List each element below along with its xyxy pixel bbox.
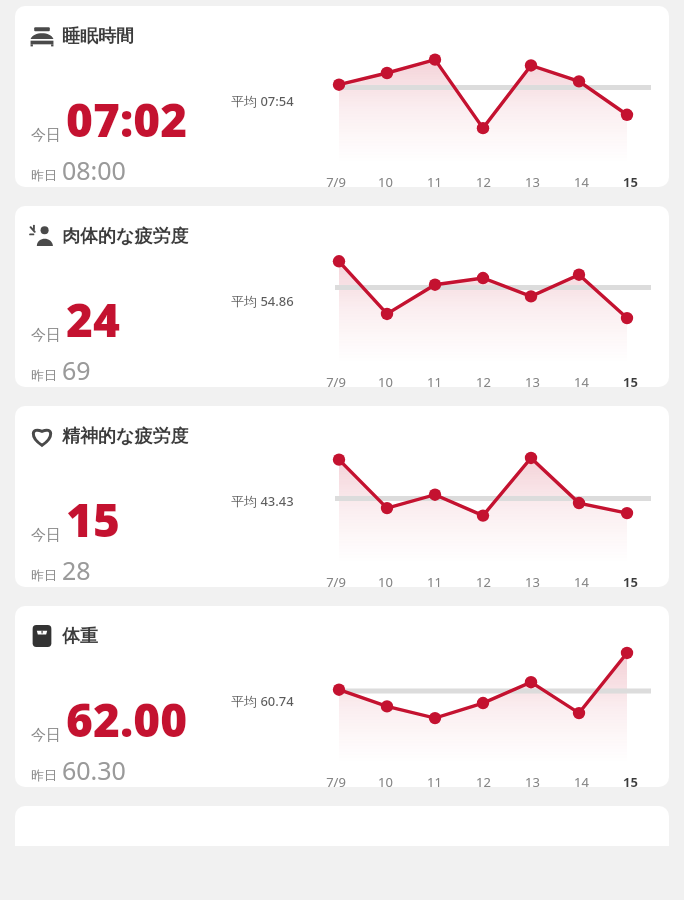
other: Sleep — [29, 23, 55, 49]
staticText: 13 — [508, 773, 557, 787]
staticText: 14 — [557, 173, 606, 187]
other: Weight — [29, 623, 55, 649]
staticText: 11 — [410, 373, 459, 387]
staticText: 10 — [361, 373, 410, 387]
staticText: 昨日 — [31, 567, 57, 583]
staticText: 体重 — [62, 625, 98, 648]
staticText: 69 — [62, 353, 91, 387]
staticText: 睡眠時間 — [62, 25, 134, 48]
staticText: 肉体的な疲労度 — [62, 225, 189, 248]
staticText: 10 — [361, 773, 410, 787]
staticText: 12 — [459, 773, 508, 787]
staticText: 12 — [459, 173, 508, 187]
staticText: 7/9 — [311, 173, 361, 187]
staticText: 11 — [410, 773, 459, 787]
other: Mental fatigue — [29, 423, 55, 449]
staticText: 08:00 — [62, 153, 126, 187]
staticText: 13 — [508, 373, 557, 387]
staticText: 12 — [459, 373, 508, 387]
staticText: 60.30 — [62, 753, 126, 787]
staticText: 10 — [361, 573, 410, 587]
staticText: 15 — [66, 488, 120, 551]
staticText: 今日 — [31, 526, 61, 545]
staticText: 62.00 — [66, 688, 188, 751]
staticText: 今日 — [31, 726, 61, 745]
staticText: 7/9 — [311, 373, 361, 387]
other: Physical fatigue — [29, 223, 55, 249]
button[interactable]: Mental fatigue — [15, 406, 669, 587]
staticText: 7/9 — [311, 773, 361, 787]
staticText: 13 — [508, 573, 557, 587]
staticText: 平均 54.86 — [231, 292, 294, 310]
staticText: 14 — [557, 573, 606, 587]
staticText: 11 — [410, 173, 459, 187]
button[interactable]: Sleep — [15, 6, 669, 187]
staticText: 24 — [66, 288, 120, 351]
button[interactable]: Physical fatigue — [15, 206, 669, 387]
staticText: 昨日 — [31, 367, 57, 383]
staticText: 15 — [606, 773, 655, 787]
staticText: 平均 07:54 — [231, 92, 294, 110]
staticText: 精神的な疲労度 — [62, 425, 189, 448]
staticText: 12 — [459, 573, 508, 587]
staticText: 14 — [557, 373, 606, 387]
button[interactable]: Weight — [15, 606, 669, 787]
staticText: 10 — [361, 173, 410, 187]
staticText: 平均 43.43 — [231, 492, 294, 510]
staticText: 15 — [606, 173, 655, 187]
staticText: 7/9 — [311, 573, 361, 587]
staticText: 15 — [606, 373, 655, 387]
staticText: 13 — [508, 173, 557, 187]
staticText: 平均 60.74 — [231, 692, 294, 710]
staticText: 28 — [62, 553, 91, 587]
staticText: 14 — [557, 773, 606, 787]
staticText: 今日 — [31, 126, 61, 145]
staticText: 昨日 — [31, 167, 57, 183]
staticText: 07:02 — [66, 88, 188, 151]
staticText: 今日 — [31, 326, 61, 345]
staticText: 昨日 — [31, 767, 57, 783]
staticText: 11 — [410, 573, 459, 587]
staticText: 15 — [606, 573, 655, 587]
